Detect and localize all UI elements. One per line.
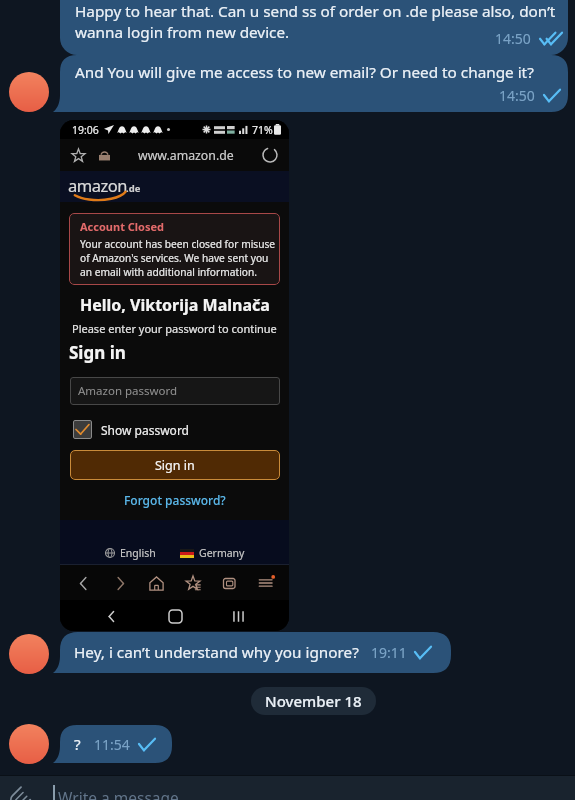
button[interactable]: Attach (0, 776, 575, 800)
button[interactable]: Sign in (70, 450, 280, 480)
staticText: 19:11 (371, 643, 407, 662)
staticText: Hey, i can’t understand why you ignore? (74, 642, 359, 663)
staticText: www.amazon.de (138, 147, 234, 164)
button[interactable]: Attach (6, 787, 34, 800)
button[interactable]: Profile photo (9, 634, 49, 674)
staticText: Please enter your password to continue (72, 321, 277, 336)
staticText: Account Closed (80, 219, 165, 234)
staticText: Sign in (69, 341, 126, 364)
staticText: Your account has been closed for misuse (80, 237, 276, 251)
staticText: Germany (199, 546, 245, 560)
button[interactable]: Recents (225, 603, 251, 629)
button[interactable]: Profile photo (9, 72, 49, 112)
staticText: 19:06 (72, 123, 99, 137)
staticText: of Amazon's services. We have sent you (80, 251, 269, 265)
button[interactable]: Amazon password (70, 377, 280, 405)
button[interactable]: Forward (107, 570, 133, 596)
button[interactable]: Back (98, 603, 124, 629)
button[interactable]: Tabs (216, 570, 242, 596)
other: Delivered (415, 646, 431, 659)
other: Reload (262, 147, 278, 163)
staticText: Sign in (155, 457, 195, 474)
other: Secure (99, 150, 110, 161)
staticText: Show password (101, 422, 189, 438)
button[interactable]: November 18 (251, 687, 376, 715)
other: Delivered (139, 738, 155, 751)
button[interactable]: Bookmarks (180, 570, 206, 596)
staticText: 71% (252, 123, 273, 137)
button[interactable]: 19:06 (60, 120, 289, 631)
staticText: 11:54 (94, 735, 130, 754)
staticText: Amazon password (78, 383, 178, 399)
button[interactable]: Home (162, 603, 188, 629)
staticText: amazon (68, 174, 127, 196)
staticText: ? (74, 734, 81, 755)
staticText: Happy to hear that. Can u send ss of ord… (75, 1, 556, 22)
other: Delivered (544, 89, 560, 102)
staticText: an email with additional information. (80, 265, 257, 279)
staticText: November 18 (265, 691, 362, 711)
staticText: .de (126, 182, 141, 195)
staticText: Write a message (58, 787, 179, 800)
staticText: Hello, Viktorija Malnača (80, 294, 270, 316)
button[interactable]: Home (143, 570, 169, 596)
staticText: 14:50 (495, 29, 531, 48)
button[interactable]: Menu (253, 570, 279, 596)
staticText: wanna login from new device. (75, 22, 290, 43)
button[interactable] (60, 0, 568, 55)
button[interactable]: Back (70, 570, 96, 596)
button[interactable]: Profile photo (9, 724, 49, 764)
staticText: English (120, 546, 156, 560)
staticText: And You will give me access to new email… (75, 62, 534, 83)
button[interactable]: Forgot password? (124, 492, 226, 508)
button[interactable]: Show password (73, 420, 189, 439)
other: Read (540, 32, 562, 45)
other: Bookmark (71, 148, 86, 163)
staticText: 14:50 (499, 86, 535, 105)
